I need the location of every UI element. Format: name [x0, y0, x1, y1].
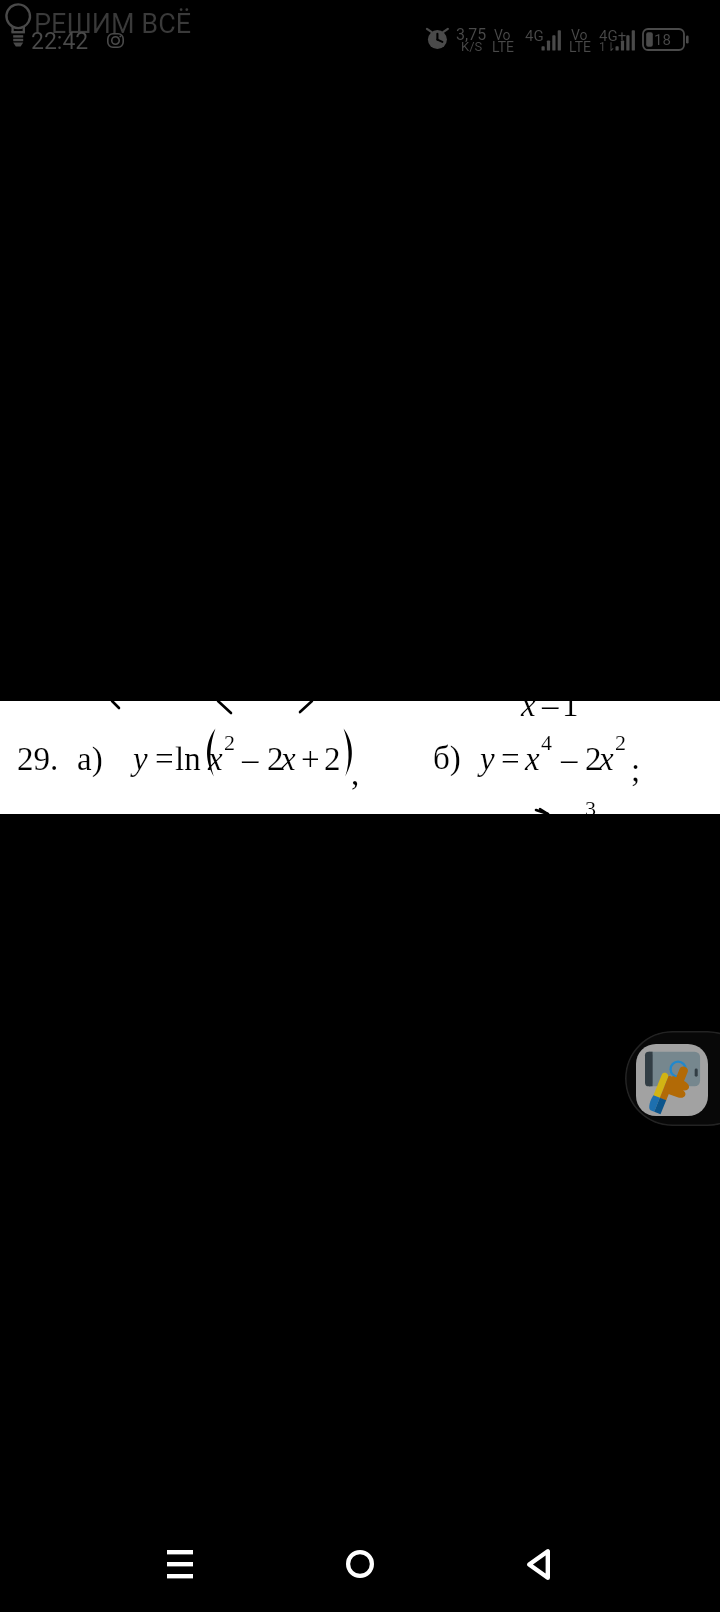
button[interactable]: Back: [493, 1519, 583, 1609]
staticText: 4: [541, 730, 552, 754]
staticText: 2: [585, 741, 602, 778]
staticText: 2: [324, 741, 341, 778]
staticText: –: [561, 741, 578, 778]
staticText: x: [525, 741, 540, 778]
button[interactable]: Recents: [135, 1519, 225, 1609]
staticText: ln: [175, 741, 201, 778]
staticText: +: [301, 741, 320, 778]
staticText: y: [480, 741, 495, 778]
staticText: 29.: [17, 741, 59, 778]
staticText: 2: [615, 730, 626, 754]
staticText: K/S: [461, 39, 483, 54]
staticText: a): [77, 741, 103, 778]
button[interactable]: Screen recorder floating button: [625, 1031, 720, 1126]
staticText: 18: [654, 31, 671, 49]
staticText: –: [542, 687, 559, 724]
staticText: Vo: [494, 27, 511, 43]
staticText: 4G+: [599, 27, 627, 45]
button[interactable]: Home: [315, 1519, 405, 1609]
staticText: б): [433, 740, 461, 777]
staticText: 1: [562, 687, 579, 724]
staticText: y: [133, 741, 148, 778]
staticText: x: [521, 687, 536, 724]
staticText: =: [501, 741, 520, 778]
staticText: 3,75: [456, 25, 487, 44]
staticText: LTE: [569, 39, 591, 55]
staticText: 2: [224, 730, 235, 754]
staticText: ,: [351, 756, 360, 793]
staticText: x: [281, 741, 296, 778]
staticText: 2: [267, 741, 284, 778]
staticText: x: [599, 741, 614, 778]
staticText: =: [155, 741, 174, 778]
staticText: 1⇂: [599, 40, 616, 54]
staticText: ;: [631, 752, 641, 789]
staticText: x: [208, 741, 223, 778]
staticText: 22:42: [31, 28, 89, 55]
staticText: –: [242, 741, 259, 778]
staticText: LTE: [492, 39, 514, 55]
staticText: 3: [585, 796, 596, 820]
staticText: 4G: [525, 27, 544, 45]
staticText: РЕШИМ ВСЁ: [34, 8, 192, 40]
staticText: Vo: [571, 27, 588, 43]
